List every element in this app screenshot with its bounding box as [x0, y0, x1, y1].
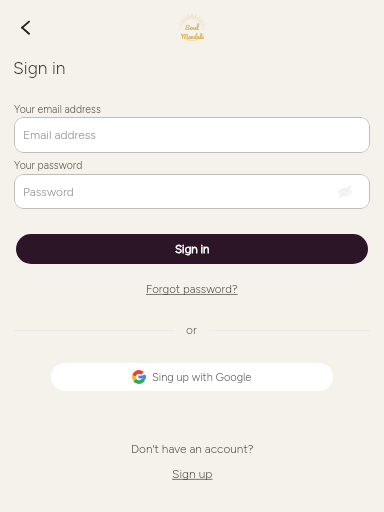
staticText: Mandala	[181, 31, 204, 40]
button[interactable]: Show password	[338, 185, 352, 199]
staticText: Email address	[23, 128, 96, 142]
staticText: Sign in	[13, 57, 66, 78]
staticText: Sing up with Google	[152, 371, 252, 384]
button[interactable]: Sign in	[16, 234, 368, 264]
staticText: Soul	[185, 21, 199, 33]
button[interactable]: Forgot password?	[146, 282, 238, 296]
staticText: or	[186, 323, 197, 337]
staticText: Sign in	[175, 242, 210, 256]
button[interactable]: Sign up	[172, 467, 213, 481]
button[interactable]: Back	[10, 16, 34, 40]
staticText: Password	[23, 185, 74, 199]
button[interactable]: Sing up with Google	[51, 363, 333, 391]
button[interactable]: Password	[14, 174, 370, 209]
staticText: Don't have an account?	[131, 442, 254, 456]
staticText: Your email address	[14, 103, 101, 116]
button[interactable]: Email address	[14, 117, 370, 153]
staticText: Your password	[14, 159, 83, 172]
